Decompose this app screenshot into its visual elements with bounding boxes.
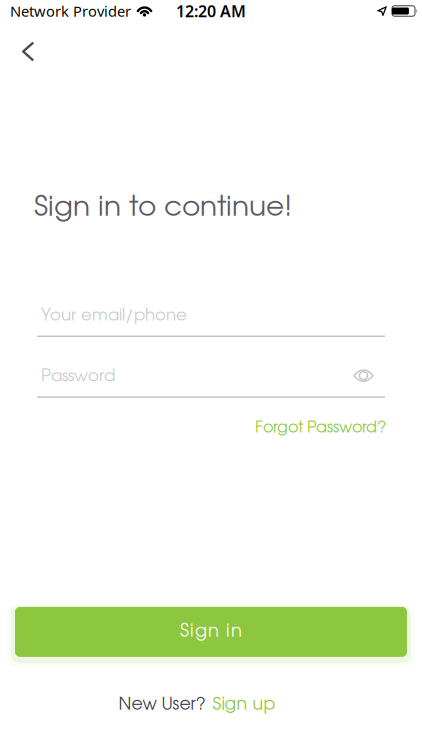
- staticText: Password: [41, 369, 115, 384]
- staticText: Your email/phone: [41, 308, 187, 324]
- staticText: Sign in to continue!: [34, 195, 292, 221]
- button[interactable]: Sign in: [15, 607, 407, 657]
- staticText: Sign up: [212, 697, 275, 713]
- staticText: Network Provider: [10, 1, 131, 21]
- staticText: 12:20 AM: [176, 0, 246, 22]
- button[interactable]: Show password: [353, 369, 374, 383]
- staticText: Sign in: [180, 623, 242, 640]
- button[interactable]: Forgot Password?: [255, 421, 386, 436]
- staticText: Forgot Password?: [255, 421, 386, 436]
- staticText: New User?: [118, 697, 205, 713]
- button[interactable]: Sign up: [212, 697, 275, 713]
- button[interactable]: Back: [22, 42, 34, 61]
